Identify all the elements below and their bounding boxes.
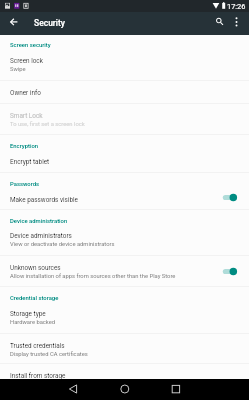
staticText: Encrypt tablet bbox=[10, 158, 50, 166]
button[interactable]: Screen lock bbox=[0, 50, 249, 82]
staticText: Trusted credentials bbox=[10, 342, 65, 350]
staticText: View or deactivate device administrators bbox=[10, 241, 115, 248]
staticText: Screen security bbox=[10, 42, 51, 49]
staticText: Owner info bbox=[10, 89, 41, 97]
staticText: Device administrators bbox=[10, 232, 72, 240]
button[interactable]: Back bbox=[56, 379, 91, 400]
button[interactable]: Storage type bbox=[0, 303, 249, 335]
staticText: Passwords bbox=[10, 181, 40, 188]
button[interactable]: Search bbox=[209, 12, 231, 35]
staticText: Hardware backed bbox=[10, 319, 56, 326]
button[interactable]: Device administrators bbox=[0, 225, 249, 257]
staticText: Encryption bbox=[10, 143, 39, 150]
staticText: Make passwords visible bbox=[10, 196, 78, 204]
staticText: Swipe bbox=[10, 66, 26, 73]
button[interactable]: Install from storage bbox=[0, 365, 249, 379]
button[interactable]: More options bbox=[229, 12, 245, 35]
button[interactable]: Make passwords visible bbox=[0, 189, 249, 211]
staticText: 17:26 bbox=[227, 2, 246, 11]
button[interactable]: Navigate up bbox=[3, 12, 25, 35]
staticText: Device administration bbox=[10, 218, 68, 225]
staticText: Credential storage bbox=[10, 295, 59, 302]
button[interactable]: Smart Lock bbox=[0, 105, 249, 136]
staticText: Security bbox=[34, 18, 66, 28]
staticText: Smart Lock bbox=[10, 112, 43, 120]
staticText: Install from storage bbox=[10, 372, 66, 380]
button[interactable]: Recent apps bbox=[158, 379, 193, 400]
staticText: Screen lock bbox=[10, 57, 43, 65]
staticText: Allow installation of apps from sources … bbox=[10, 273, 176, 280]
button[interactable]: Unknown sources bbox=[0, 257, 249, 288]
button[interactable]: Trusted credentials bbox=[0, 335, 249, 365]
button[interactable]: Owner info bbox=[0, 82, 249, 105]
staticText: To use, first set a screen lock bbox=[10, 121, 85, 128]
staticText: Display trusted CA certificates bbox=[10, 351, 88, 358]
staticText: Unknown sources bbox=[10, 264, 61, 272]
button[interactable]: Encrypt tablet bbox=[0, 151, 249, 174]
staticText: Storage type bbox=[10, 310, 46, 318]
button[interactable]: Home bbox=[107, 379, 142, 400]
